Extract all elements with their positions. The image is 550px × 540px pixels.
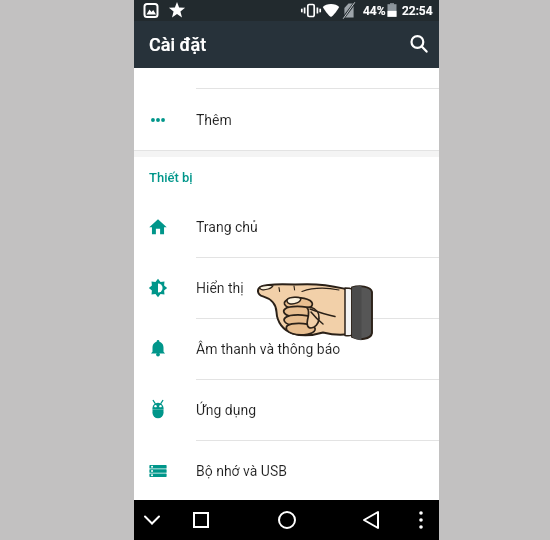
staticText: Cài đặt [149, 34, 207, 55]
button[interactable]: Back [354, 500, 390, 540]
button[interactable]: Search [401, 27, 437, 63]
button[interactable]: Menu [403, 500, 439, 540]
staticText: Thêm [196, 112, 232, 128]
staticText: Ứng dụng [196, 402, 257, 418]
button[interactable]: Home [269, 500, 305, 540]
staticText: Hiển thị [196, 280, 244, 296]
button[interactable]: Hide keyboard [134, 500, 170, 540]
staticText: 22:54 [402, 4, 433, 18]
button[interactable]: Âm thanh và thông báo [134, 319, 439, 379]
staticText: Bộ nhớ và USB [196, 463, 287, 479]
staticText: Thiết bị [149, 170, 193, 185]
button[interactable]: Trang chủ [134, 197, 439, 257]
staticText: Trang chủ [196, 219, 258, 235]
button[interactable]: Ứng dụng [134, 380, 439, 440]
button[interactable]: Recents [183, 500, 219, 540]
button[interactable]: Hiển thị [134, 258, 439, 318]
button[interactable]: Thêm [134, 89, 439, 150]
staticText: 44% [363, 4, 386, 18]
staticText: Âm thanh và thông báo [196, 341, 341, 357]
button[interactable]: Bộ nhớ và USB [134, 441, 439, 500]
